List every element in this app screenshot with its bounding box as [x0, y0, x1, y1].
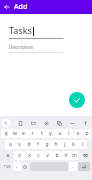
- button[interactable]: Voice input: [81, 119, 89, 127]
- button[interactable]: Settings: [42, 119, 50, 127]
- button[interactable]: ?123: [2, 162, 12, 171]
- button[interactable]: Clipboard: [16, 119, 24, 127]
- button[interactable]: b: [52, 151, 61, 160]
- button[interactable]: Save task: [69, 92, 85, 108]
- button[interactable]: w: [10, 129, 19, 138]
- button[interactable]: o: [73, 129, 82, 138]
- staticText: v: [46, 152, 49, 159]
- button[interactable]: e: [19, 129, 28, 138]
- button[interactable]: j: [60, 140, 69, 149]
- staticText: q: [4, 130, 8, 137]
- button[interactable]: n: [61, 151, 70, 160]
- button[interactable]: z: [14, 151, 24, 160]
- button[interactable]: More options: [68, 119, 76, 127]
- staticText: d: [27, 141, 31, 148]
- button[interactable]: x: [24, 151, 34, 160]
- staticText: a: [9, 141, 12, 148]
- button[interactable]: Enter: [78, 162, 90, 171]
- staticText: e: [22, 130, 25, 137]
- button[interactable]: Translate: [55, 119, 63, 127]
- button[interactable]: m: [70, 151, 79, 160]
- staticText: w: [13, 130, 17, 137]
- button[interactable]: l: [78, 140, 87, 149]
- staticText: s: [18, 141, 21, 148]
- button[interactable]: d: [24, 140, 33, 149]
- staticText: c: [37, 152, 40, 159]
- staticText: j: [64, 141, 66, 148]
- staticText: g: [45, 141, 49, 148]
- button[interactable]: Backspace: [80, 151, 90, 160]
- button[interactable]: ,: [13, 162, 21, 171]
- button[interactable]: h: [51, 140, 60, 149]
- staticText: ?123: [4, 165, 11, 169]
- button[interactable]: k: [69, 140, 78, 149]
- staticText: .: [72, 163, 74, 170]
- staticText: Add: [14, 2, 28, 12]
- button[interactable]: g: [42, 140, 51, 149]
- staticText: l: [82, 141, 84, 148]
- staticText: t: [41, 130, 43, 137]
- button[interactable]: y: [46, 129, 55, 138]
- staticText: Description: [9, 44, 34, 50]
- button[interactable]: Shift: [2, 151, 13, 160]
- button[interactable]: .: [69, 162, 77, 171]
- button[interactable]: u: [55, 129, 64, 138]
- staticText: x: [28, 152, 31, 159]
- button[interactable]: c: [34, 151, 43, 160]
- staticText: r: [31, 130, 34, 137]
- button[interactable]: i: [64, 129, 73, 138]
- button[interactable]: GIF: [29, 119, 37, 127]
- button[interactable]: r: [28, 129, 37, 138]
- button[interactable]: t: [37, 129, 46, 138]
- button[interactable]: Back: [0, 0, 14, 14]
- staticText: o: [76, 130, 80, 137]
- staticText: p: [85, 130, 89, 137]
- button[interactable]: f: [33, 140, 42, 149]
- button[interactable]: a: [5, 140, 15, 149]
- button[interactable]: p: [82, 129, 91, 138]
- staticText: i: [68, 130, 70, 137]
- staticText: n: [64, 152, 68, 159]
- staticText: u: [58, 130, 62, 137]
- button[interactable]: s: [15, 140, 24, 149]
- staticText: y: [49, 130, 52, 137]
- staticText: h: [54, 141, 58, 148]
- staticText: f: [37, 141, 39, 148]
- button[interactable]: q: [1, 129, 10, 138]
- button[interactable]: Expand toolbar: [2, 119, 10, 127]
- button[interactable]: Emoji: [22, 162, 28, 171]
- staticText: Tasks: [9, 24, 32, 36]
- staticText: m: [72, 152, 77, 159]
- staticText: ,: [16, 163, 18, 170]
- staticText: k: [72, 141, 75, 148]
- button[interactable]: v: [43, 151, 52, 160]
- staticText: b: [55, 152, 59, 159]
- staticText: z: [18, 152, 21, 159]
